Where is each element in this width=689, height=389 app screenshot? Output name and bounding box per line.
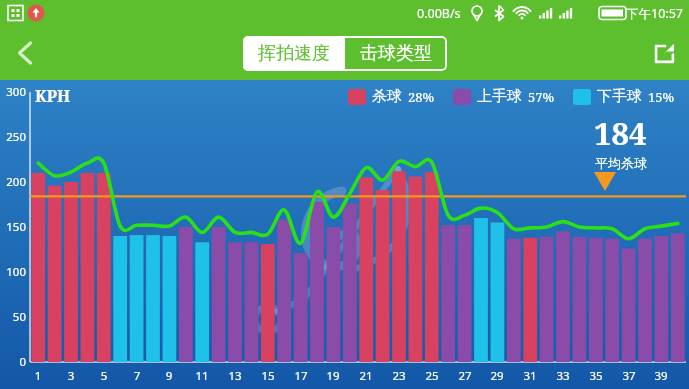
button[interactable]: 击球类型 bbox=[345, 36, 447, 71]
staticText: 184 bbox=[594, 112, 647, 154]
staticText: 27 bbox=[452, 368, 478, 384]
staticText: 0.00B/s bbox=[417, 5, 461, 22]
staticText: 平均杀球 bbox=[595, 155, 647, 171]
staticText: 1 bbox=[25, 368, 51, 384]
staticText: 35 bbox=[583, 368, 609, 384]
button[interactable]: 挥拍速度 bbox=[243, 36, 345, 71]
staticText: 28% bbox=[408, 88, 435, 106]
staticText: 15 bbox=[255, 368, 281, 384]
staticText: 33 bbox=[550, 368, 576, 384]
staticText: 击球类型 bbox=[360, 42, 432, 65]
button[interactable]: Share bbox=[639, 28, 689, 78]
staticText: 17 bbox=[288, 368, 314, 384]
staticText: 7 bbox=[124, 368, 150, 384]
staticText: 37 bbox=[616, 368, 642, 384]
staticText: 下手球 bbox=[597, 87, 642, 106]
staticText: 3 bbox=[58, 368, 84, 384]
staticText: 23 bbox=[386, 368, 412, 384]
staticText: 9 bbox=[156, 368, 182, 384]
staticText: 11 bbox=[189, 368, 215, 384]
staticText: 13 bbox=[222, 368, 248, 384]
staticText: 下午10:57 bbox=[626, 5, 683, 22]
staticText: 39 bbox=[648, 368, 674, 384]
staticText: 19 bbox=[320, 368, 346, 384]
staticText: 31 bbox=[517, 368, 543, 384]
staticText: 200 bbox=[0, 174, 26, 190]
button[interactable]: 杀球 bbox=[348, 87, 435, 106]
staticText: 15% bbox=[648, 88, 675, 106]
staticText: 100 bbox=[0, 264, 26, 280]
staticText: 上手球 bbox=[477, 87, 522, 106]
staticText: 杀球 bbox=[372, 87, 402, 106]
staticText: 57% bbox=[528, 88, 555, 106]
staticText: 5 bbox=[91, 368, 117, 384]
button[interactable]: Back bbox=[0, 28, 50, 78]
staticText: 0 bbox=[0, 354, 26, 370]
button[interactable]: 下手球 bbox=[573, 87, 675, 106]
staticText: 25 bbox=[419, 368, 445, 384]
button[interactable]: 上手球 bbox=[453, 87, 555, 106]
staticText: 300 bbox=[0, 84, 26, 100]
staticText: 250 bbox=[0, 129, 26, 145]
staticText: 50 bbox=[0, 309, 26, 325]
staticText: 21 bbox=[353, 368, 379, 384]
staticText: KPH bbox=[35, 85, 71, 107]
staticText: 150 bbox=[0, 219, 26, 235]
staticText: 29 bbox=[484, 368, 510, 384]
staticText: 挥拍速度 bbox=[258, 42, 330, 65]
